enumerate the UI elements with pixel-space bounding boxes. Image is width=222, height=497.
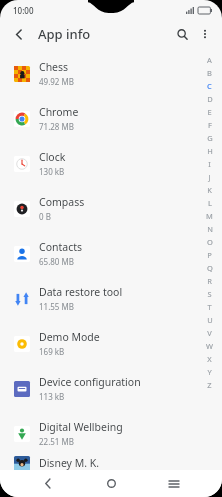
staticText: B <box>207 68 212 78</box>
staticText: Z <box>207 380 212 390</box>
button[interactable]: Q <box>203 261 216 274</box>
staticText: A <box>207 55 212 65</box>
staticText: 10:00 <box>13 5 34 16</box>
staticText: Chess <box>39 60 69 74</box>
button[interactable]: F <box>203 118 216 131</box>
button[interactable]: W <box>203 339 216 352</box>
button[interactable]: N <box>203 222 216 235</box>
button[interactable]: X <box>203 352 216 365</box>
button[interactable]: Contacts <box>0 231 222 276</box>
staticText: Contacts <box>39 240 83 254</box>
staticText: 22.51 MB <box>39 436 74 447</box>
button[interactable]: Z <box>203 378 216 391</box>
button[interactable]: More options <box>194 23 216 45</box>
button[interactable]: Back <box>33 470 63 497</box>
button[interactable]: M <box>203 209 216 222</box>
button[interactable]: T <box>203 300 216 313</box>
staticText: U <box>207 315 213 325</box>
button[interactable]: Clock <box>0 141 222 186</box>
staticText: N <box>207 224 213 234</box>
staticText: E <box>207 107 212 117</box>
staticText: K <box>207 185 212 195</box>
button[interactable]: Home <box>96 470 126 497</box>
staticText: O <box>207 237 213 247</box>
staticText: V <box>207 328 212 338</box>
button[interactable]: Compass <box>0 186 222 231</box>
staticText: 11.55 MB <box>39 301 74 312</box>
button[interactable]: Recent apps <box>159 470 189 497</box>
staticText: J <box>208 172 211 182</box>
staticText: Clock <box>39 150 66 164</box>
button[interactable]: H <box>203 144 216 157</box>
button[interactable]: Device configuration <box>0 366 222 411</box>
button[interactable]: C <box>203 79 216 92</box>
button[interactable]: J <box>203 170 216 183</box>
staticText: 49.92 MB <box>39 76 74 87</box>
staticText: M <box>206 211 213 221</box>
button[interactable]: O <box>203 235 216 248</box>
staticText: Disney M. K. <box>39 456 100 470</box>
staticText: F <box>208 120 212 130</box>
staticText: R <box>207 276 212 286</box>
button[interactable]: K <box>203 183 216 196</box>
button[interactable]: G <box>203 131 216 144</box>
staticText: 71.28 MB <box>39 121 74 132</box>
staticText: Y <box>207 367 212 377</box>
button[interactable]: Demo Mode <box>0 321 222 366</box>
button[interactable]: V <box>203 326 216 339</box>
staticText: G <box>207 133 213 143</box>
button[interactable]: Chess <box>0 51 222 96</box>
staticText: I <box>208 159 211 169</box>
button[interactable]: Y <box>203 365 216 378</box>
button[interactable]: Disney M. K. <box>0 456 222 470</box>
button[interactable]: R <box>203 274 216 287</box>
button[interactable]: Back <box>8 23 30 45</box>
staticText: Device configuration <box>39 375 141 389</box>
staticText: Q <box>207 263 213 273</box>
button[interactable]: P <box>203 248 216 261</box>
staticText: P <box>207 250 212 260</box>
staticText: App info <box>38 25 91 43</box>
button[interactable]: Search <box>170 22 194 46</box>
staticText: C <box>207 81 212 91</box>
staticText: Data restore tool <box>39 285 123 299</box>
staticText: D <box>207 94 213 104</box>
button[interactable]: Digital Wellbeing <box>0 411 222 456</box>
staticText: Digital Wellbeing <box>39 420 123 434</box>
button[interactable]: U <box>203 313 216 326</box>
staticText: W <box>206 341 213 351</box>
staticText: H <box>207 146 213 156</box>
staticText: Compass <box>39 195 85 209</box>
button[interactable]: L <box>203 196 216 209</box>
button[interactable]: Data restore tool <box>0 276 222 321</box>
staticText: L <box>208 198 212 208</box>
staticText: T <box>207 302 212 312</box>
staticText: 130 kB <box>39 166 65 177</box>
button[interactable]: D <box>203 92 216 105</box>
button[interactable]: A <box>203 53 216 66</box>
staticText: 65.80 MB <box>39 256 74 267</box>
staticText: 113 kB <box>39 391 65 402</box>
staticText: X <box>207 354 212 364</box>
button[interactable]: B <box>203 66 216 79</box>
staticText: 169 kB <box>39 346 65 357</box>
staticText: S <box>207 289 212 299</box>
button[interactable]: Chrome <box>0 96 222 141</box>
staticText: Demo Mode <box>39 330 100 344</box>
button[interactable]: E <box>203 105 216 118</box>
button[interactable]: S <box>203 287 216 300</box>
staticText: 0 B <box>39 211 51 222</box>
button[interactable]: I <box>203 157 216 170</box>
staticText: Chrome <box>39 105 79 119</box>
